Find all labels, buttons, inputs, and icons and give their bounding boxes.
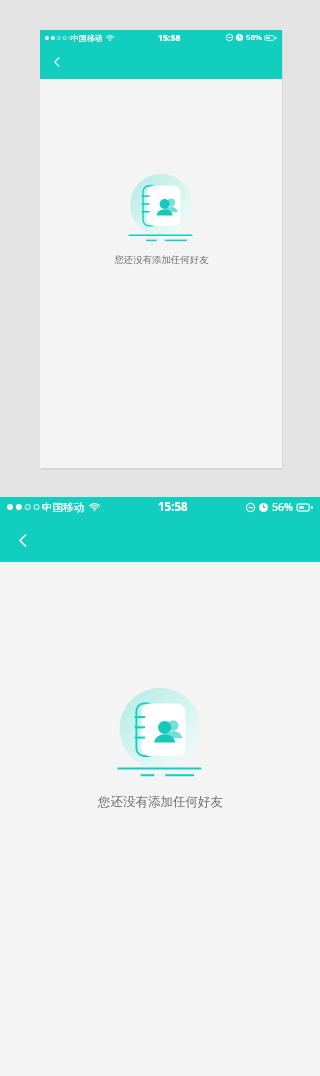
button[interactable]: Back bbox=[3, 520, 43, 560]
button[interactable]: Back bbox=[42, 47, 72, 77]
staticText: 15:58 bbox=[158, 499, 188, 515]
staticText: 中国移动 bbox=[71, 33, 103, 43]
staticText: 56% bbox=[246, 32, 262, 43]
staticText: 您还没有添加任何好友 bbox=[114, 254, 209, 266]
staticText: 中国移动 bbox=[42, 501, 84, 514]
staticText: 15:58 bbox=[158, 32, 181, 44]
staticText: 56% bbox=[272, 500, 293, 514]
staticText: 您还没有添加任何好友 bbox=[98, 794, 223, 810]
